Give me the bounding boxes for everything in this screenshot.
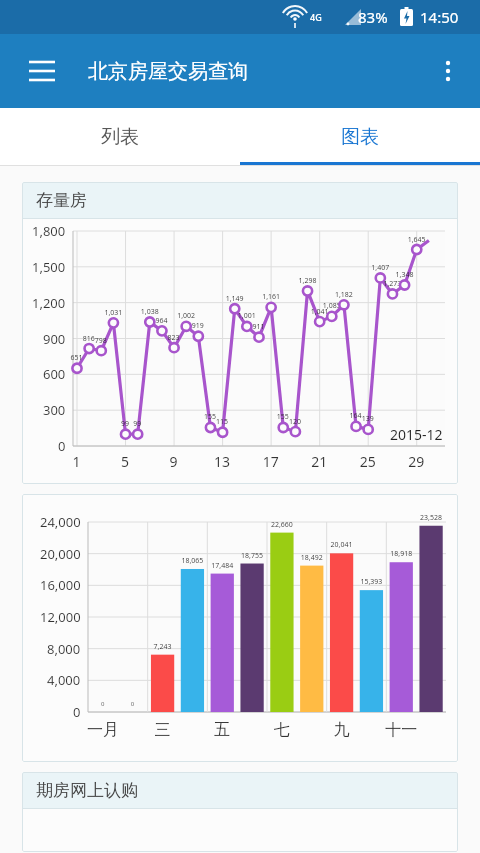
button[interactable]: 图表 — [240, 108, 480, 165]
button[interactable]: More options — [424, 47, 472, 95]
button[interactable] — [22, 494, 458, 762]
staticText: 北京房屋交易查询 — [88, 59, 248, 84]
button[interactable]: 期房网上认购 — [22, 772, 458, 852]
button[interactable]: Open navigation drawer — [18, 47, 66, 95]
button[interactable]: 存量房 — [22, 182, 458, 484]
staticText: 列表 — [101, 125, 139, 149]
button[interactable]: 列表 — [0, 108, 240, 165]
staticText: 存量房 — [36, 190, 87, 211]
staticText: 图表 — [341, 125, 379, 149]
staticText: 期房网上认购 — [36, 780, 138, 801]
